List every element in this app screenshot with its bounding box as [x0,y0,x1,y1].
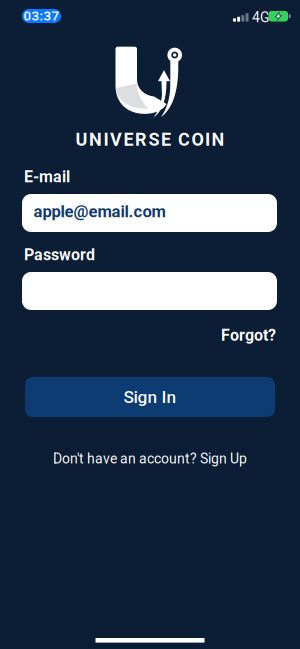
staticText: Forgot? [221,326,276,345]
button[interactable]: apple@email.com [22,194,277,232]
staticText: Sign In [123,387,176,407]
button[interactable] [22,272,277,310]
staticText: 4G [252,9,270,26]
staticText: Password [24,245,95,264]
button[interactable]: Forgot? [221,326,276,345]
staticText: 03:37 [23,8,59,24]
staticText: E-mail [24,167,70,186]
staticText: Don't have an account? Sign Up [53,450,247,467]
staticText: apple@email.com [33,202,165,221]
button[interactable]: Don't have an account? Sign Up [53,450,247,467]
button[interactable]: Sign In [25,377,275,417]
staticText: UNIVERSE COIN [75,129,224,150]
